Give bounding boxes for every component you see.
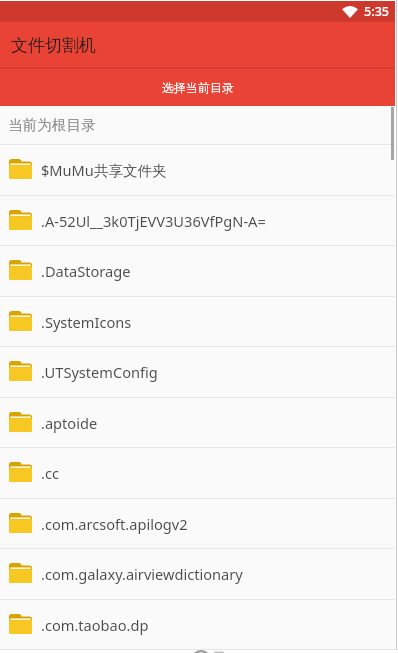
button[interactable]: $MuMu共享文件夹 (0, 145, 395, 195)
staticText: .UTSystemConfig (41, 362, 158, 382)
button[interactable]: .com.taobao.dp (0, 600, 395, 650)
button[interactable]: .A-52Ul__3k0TjEVV3U36VfPgN-A= (0, 196, 395, 246)
staticText: 5:35 (364, 3, 390, 20)
button[interactable]: .DataStorage (0, 246, 395, 296)
button[interactable]: 选择当前目录 (0, 69, 395, 106)
staticText: $MuMu共享文件夹 (41, 160, 167, 180)
staticText: 当前为根目录 (8, 116, 96, 134)
staticText: .DataStorage (41, 261, 131, 281)
button[interactable]: 当前为根目录 (0, 106, 395, 144)
other: Wi-Fi signal (342, 6, 358, 18)
button[interactable]: .com.galaxy.airviewdictionary (0, 549, 395, 599)
staticText: .cc (41, 463, 59, 483)
button[interactable]: .com.arcsoft.apilogv2 (0, 499, 395, 549)
button[interactable]: .cc (0, 448, 395, 498)
staticText: .SystemIcons (41, 312, 132, 332)
staticText: 文件切割机 (11, 35, 96, 56)
staticText: .com.galaxy.airviewdictionary (41, 564, 243, 584)
staticText: .com.taobao.dp (41, 615, 149, 635)
button[interactable]: .SystemIcons (0, 297, 395, 347)
staticText: .aptoide (41, 413, 98, 433)
staticText: .com.arcsoft.apilogv2 (41, 514, 188, 534)
staticText: .A-52Ul__3k0TjEVV3U36VfPgN-A= (41, 211, 266, 231)
button[interactable]: .UTSystemConfig (0, 347, 395, 397)
button[interactable]: .aptoide (0, 398, 395, 448)
staticText: 选择当前目录 (162, 80, 234, 95)
